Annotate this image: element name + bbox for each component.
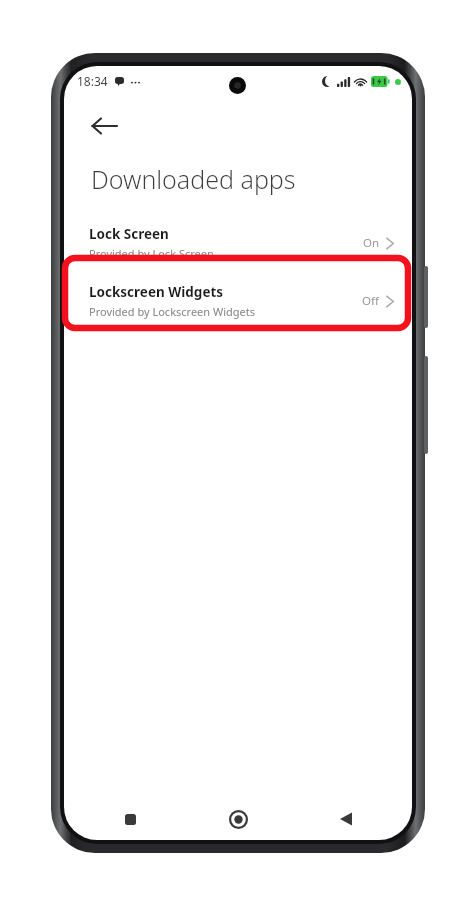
other: Power button (424, 356, 428, 454)
button[interactable]: Lock Screen (64, 221, 412, 265)
other: Volume button (424, 266, 428, 328)
staticText: 18:34 (77, 73, 108, 89)
staticText: Downloaded apps (91, 162, 296, 196)
staticText: Provided by Lockscreen Widgets (89, 304, 255, 319)
button[interactable]: Recent apps (64, 798, 180, 840)
staticText: On (362, 235, 379, 251)
button[interactable]: Lockscreen Widgets (64, 279, 412, 323)
staticText: Off (362, 293, 379, 309)
staticText: Provided by Lock Screen (89, 246, 214, 261)
button[interactable]: Home (180, 798, 296, 840)
staticText: Lockscreen Widgets (89, 283, 224, 301)
staticText: Lock Screen (89, 225, 169, 243)
button[interactable]: Back (296, 798, 412, 840)
button[interactable]: Back (84, 106, 124, 146)
